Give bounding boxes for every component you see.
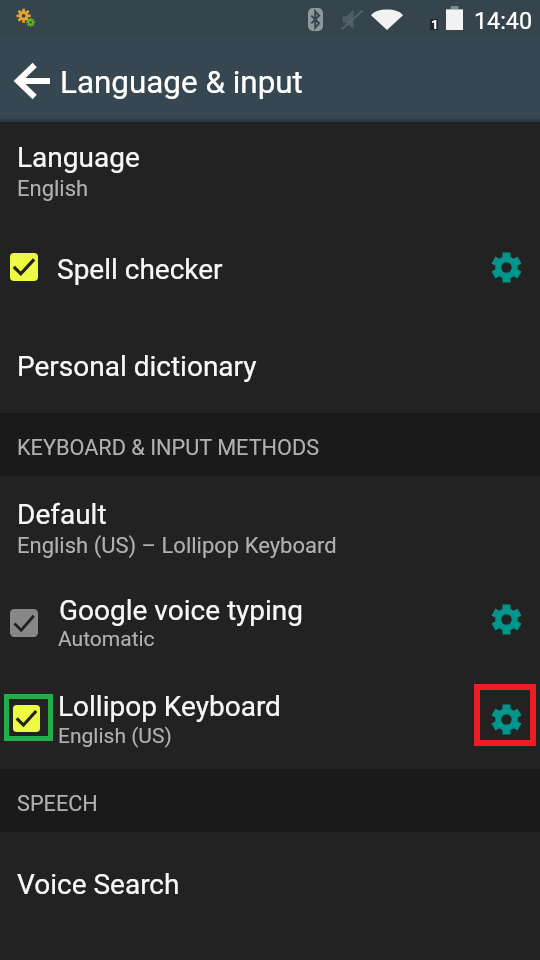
button[interactable]: Google voice typing (0, 560, 540, 670)
button[interactable]: Language (0, 122, 540, 218)
button[interactable]: Lollipop Keyboard settings (474, 684, 536, 746)
staticText: Default (17, 498, 107, 531)
staticText: Automatic (58, 627, 155, 652)
staticText: KEYBOARD & INPUT METHODS (17, 435, 320, 460)
staticText: Language (17, 141, 140, 174)
staticText: 14:40 (474, 7, 533, 34)
staticText: Google voice typing (59, 594, 304, 627)
staticText: English (17, 176, 89, 202)
staticText: SPEECH (17, 791, 98, 816)
button[interactable]: Voice Search (0, 832, 540, 932)
button[interactable]: Spell checker settings (480, 241, 532, 293)
button[interactable]: Back (10, 57, 58, 105)
button[interactable]: Google voice typing settings (480, 593, 532, 645)
staticText: Personal dictionary (17, 350, 257, 383)
staticText: English (US) (58, 724, 172, 749)
staticText: Voice Search (17, 868, 180, 901)
staticText: Spell checker (57, 253, 223, 286)
staticText: Lollipop Keyboard (58, 690, 281, 723)
button[interactable]: Spell checker (0, 218, 540, 318)
button[interactable]: Lollipop Keyboard (0, 670, 540, 769)
button[interactable]: Default (0, 477, 540, 560)
button[interactable]: Personal dictionary (0, 318, 540, 412)
staticText: English (US) – Lollipop Keyboard (17, 533, 337, 559)
staticText: Language & input (60, 64, 303, 101)
staticText: 1 (431, 17, 439, 32)
